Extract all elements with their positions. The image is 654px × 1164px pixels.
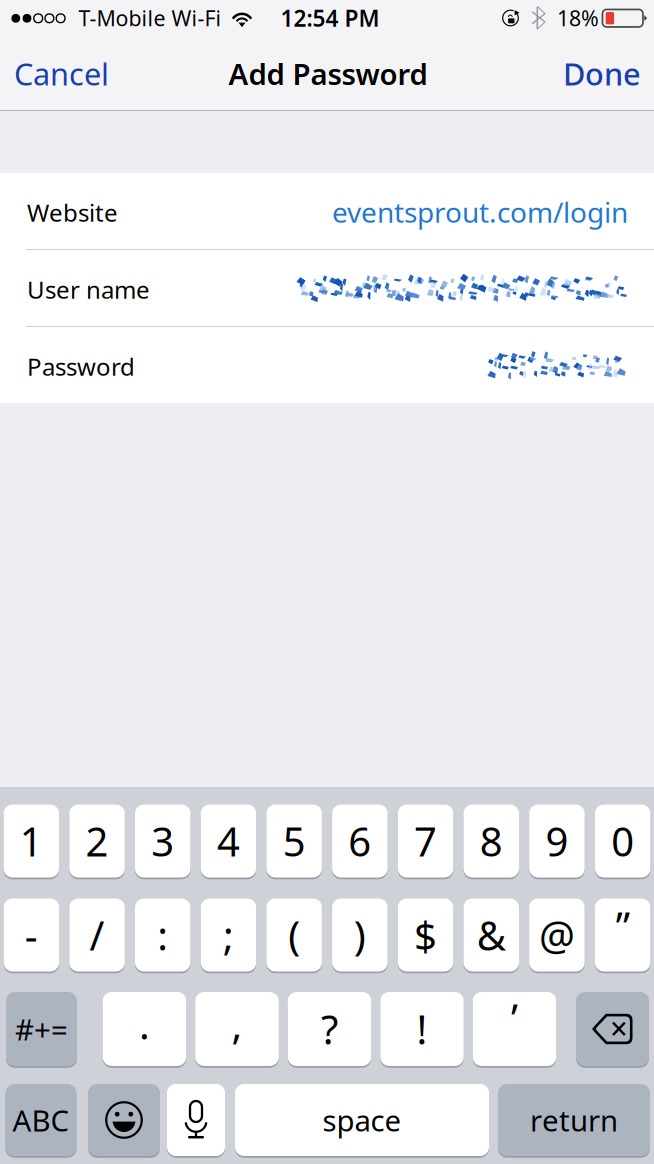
staticText: T-Mobile Wi-Fi [78, 4, 221, 32]
staticText: - [25, 908, 38, 961]
staticText: 2 [86, 814, 109, 867]
staticText: 5 [283, 814, 306, 867]
button[interactable]: Website [0, 173, 654, 249]
button[interactable]: 6 [332, 803, 388, 879]
staticText: Cancel [14, 53, 109, 94]
staticText: 12:54 PM [280, 3, 379, 33]
button[interactable]: / [69, 897, 125, 973]
staticText: Done [563, 53, 641, 94]
staticText: Add Password [228, 54, 427, 93]
staticText: $ [414, 908, 437, 961]
staticText: 6 [348, 814, 371, 867]
button[interactable]: $ [398, 897, 453, 973]
button[interactable]: 2 [69, 803, 125, 879]
button[interactable]: 5 [266, 803, 322, 879]
button[interactable]: 1 [4, 803, 59, 879]
button[interactable]: Done [545, 41, 654, 110]
button[interactable]: space [235, 1082, 489, 1157]
staticText: ABC [12, 1100, 69, 1139]
staticText: 1 [20, 814, 43, 867]
staticText: ! [416, 1002, 427, 1055]
staticText: 18% [557, 4, 599, 32]
staticText: User name [27, 274, 150, 305]
button[interactable]: User name [0, 250, 654, 326]
staticText: return [530, 1100, 618, 1139]
button[interactable]: return [498, 1082, 650, 1157]
staticText: : [157, 908, 168, 961]
button[interactable]: @ [529, 897, 585, 973]
staticText: Website [27, 197, 118, 228]
button[interactable]: Emoji [88, 1082, 160, 1157]
staticText: ; [223, 908, 234, 961]
button[interactable]: Cancel [0, 41, 127, 110]
button[interactable]: , [195, 990, 279, 1067]
button[interactable]: ) [332, 897, 388, 973]
button[interactable]: ’ [473, 990, 556, 1067]
button[interactable]: ! [380, 990, 464, 1067]
button[interactable]: . [103, 990, 186, 1067]
staticText: #+= [15, 1009, 68, 1048]
staticText: / [90, 908, 105, 961]
staticText: ” [616, 899, 630, 952]
button[interactable]: - [4, 897, 59, 973]
button[interactable]: #+= [6, 990, 77, 1067]
staticText: & [477, 908, 506, 961]
staticText: 4 [217, 814, 240, 867]
staticText: ? [321, 1002, 338, 1055]
button[interactable]: 3 [135, 803, 190, 879]
staticText: 3 [151, 814, 174, 867]
staticText: @ [539, 908, 575, 961]
staticText: ’ [511, 991, 518, 1044]
staticText: 8 [480, 814, 503, 867]
button[interactable]: 7 [398, 803, 453, 879]
button[interactable]: Password [0, 327, 654, 403]
button[interactable]: & [463, 897, 519, 973]
button[interactable]: ABC [5, 1082, 76, 1157]
staticText: ) [354, 908, 366, 961]
button[interactable]: 0 [595, 803, 650, 879]
staticText: 7 [414, 814, 437, 867]
staticText: ( [288, 908, 300, 961]
staticText: 9 [545, 814, 568, 867]
staticText: eventsprout.com/login [332, 193, 628, 231]
button[interactable]: 8 [463, 803, 519, 879]
button[interactable]: Delete [576, 990, 649, 1067]
button[interactable]: : [135, 897, 190, 973]
staticText: Password [27, 351, 135, 382]
button[interactable]: ” [595, 897, 650, 973]
staticText: space [322, 1100, 401, 1139]
button[interactable]: ; [201, 897, 256, 973]
staticText: 0 [611, 814, 634, 867]
button[interactable]: Dictation [167, 1082, 225, 1157]
staticText: , [231, 997, 242, 1050]
button[interactable]: 4 [201, 803, 256, 879]
staticText: . [139, 997, 150, 1050]
button[interactable]: 9 [529, 803, 585, 879]
button[interactable]: ( [266, 897, 322, 973]
button[interactable]: ? [288, 990, 371, 1067]
